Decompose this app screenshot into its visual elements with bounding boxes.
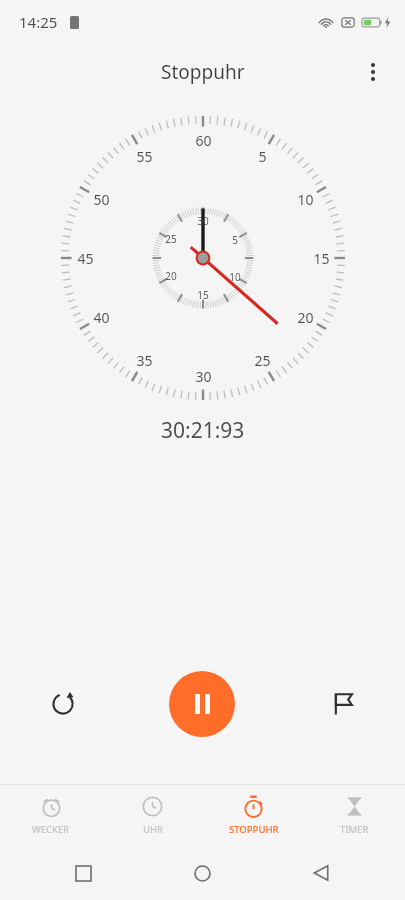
button[interactable]: Reset (35, 676, 91, 732)
button[interactable]: More options (349, 48, 397, 96)
staticText: UHR (143, 823, 163, 836)
staticText: Stoppuhr (161, 59, 245, 85)
staticText: 15 (197, 288, 209, 302)
staticText: 35 (136, 351, 153, 369)
staticText: STOPPUHR (229, 823, 279, 836)
button[interactable]: STOPPUHR (203, 785, 304, 845)
button[interactable]: Home (178, 849, 226, 897)
staticText: 14:25 (19, 12, 58, 32)
staticText: 25 (165, 232, 177, 246)
button[interactable]: Pause (169, 671, 235, 737)
staticText: 20 (165, 269, 177, 283)
staticText: 50 (93, 190, 110, 208)
staticText: 55 (136, 147, 153, 165)
staticText: 10 (229, 270, 241, 284)
staticText: 40 (93, 308, 110, 326)
staticText: WECKER (32, 823, 70, 836)
staticText: 30 (197, 214, 209, 228)
staticText: 25 (254, 351, 271, 369)
staticText: 15 (313, 249, 330, 267)
staticText: 10 (297, 190, 314, 208)
staticText: 30:21:93 (161, 416, 245, 445)
button[interactable]: Recents (59, 849, 107, 897)
staticText: 5 (232, 233, 238, 247)
staticText: 5 (258, 147, 267, 165)
staticText: 60 (195, 131, 212, 149)
button[interactable]: Lap (314, 676, 370, 732)
button[interactable]: UHR (102, 785, 203, 845)
staticText: 45 (77, 249, 94, 267)
button[interactable]: TIMER (304, 785, 405, 845)
staticText: TIMER (340, 823, 369, 836)
staticText: 30 (195, 367, 212, 385)
button[interactable]: WECKER (0, 785, 102, 845)
button[interactable]: Back (297, 849, 345, 897)
staticText: 20 (297, 308, 314, 326)
